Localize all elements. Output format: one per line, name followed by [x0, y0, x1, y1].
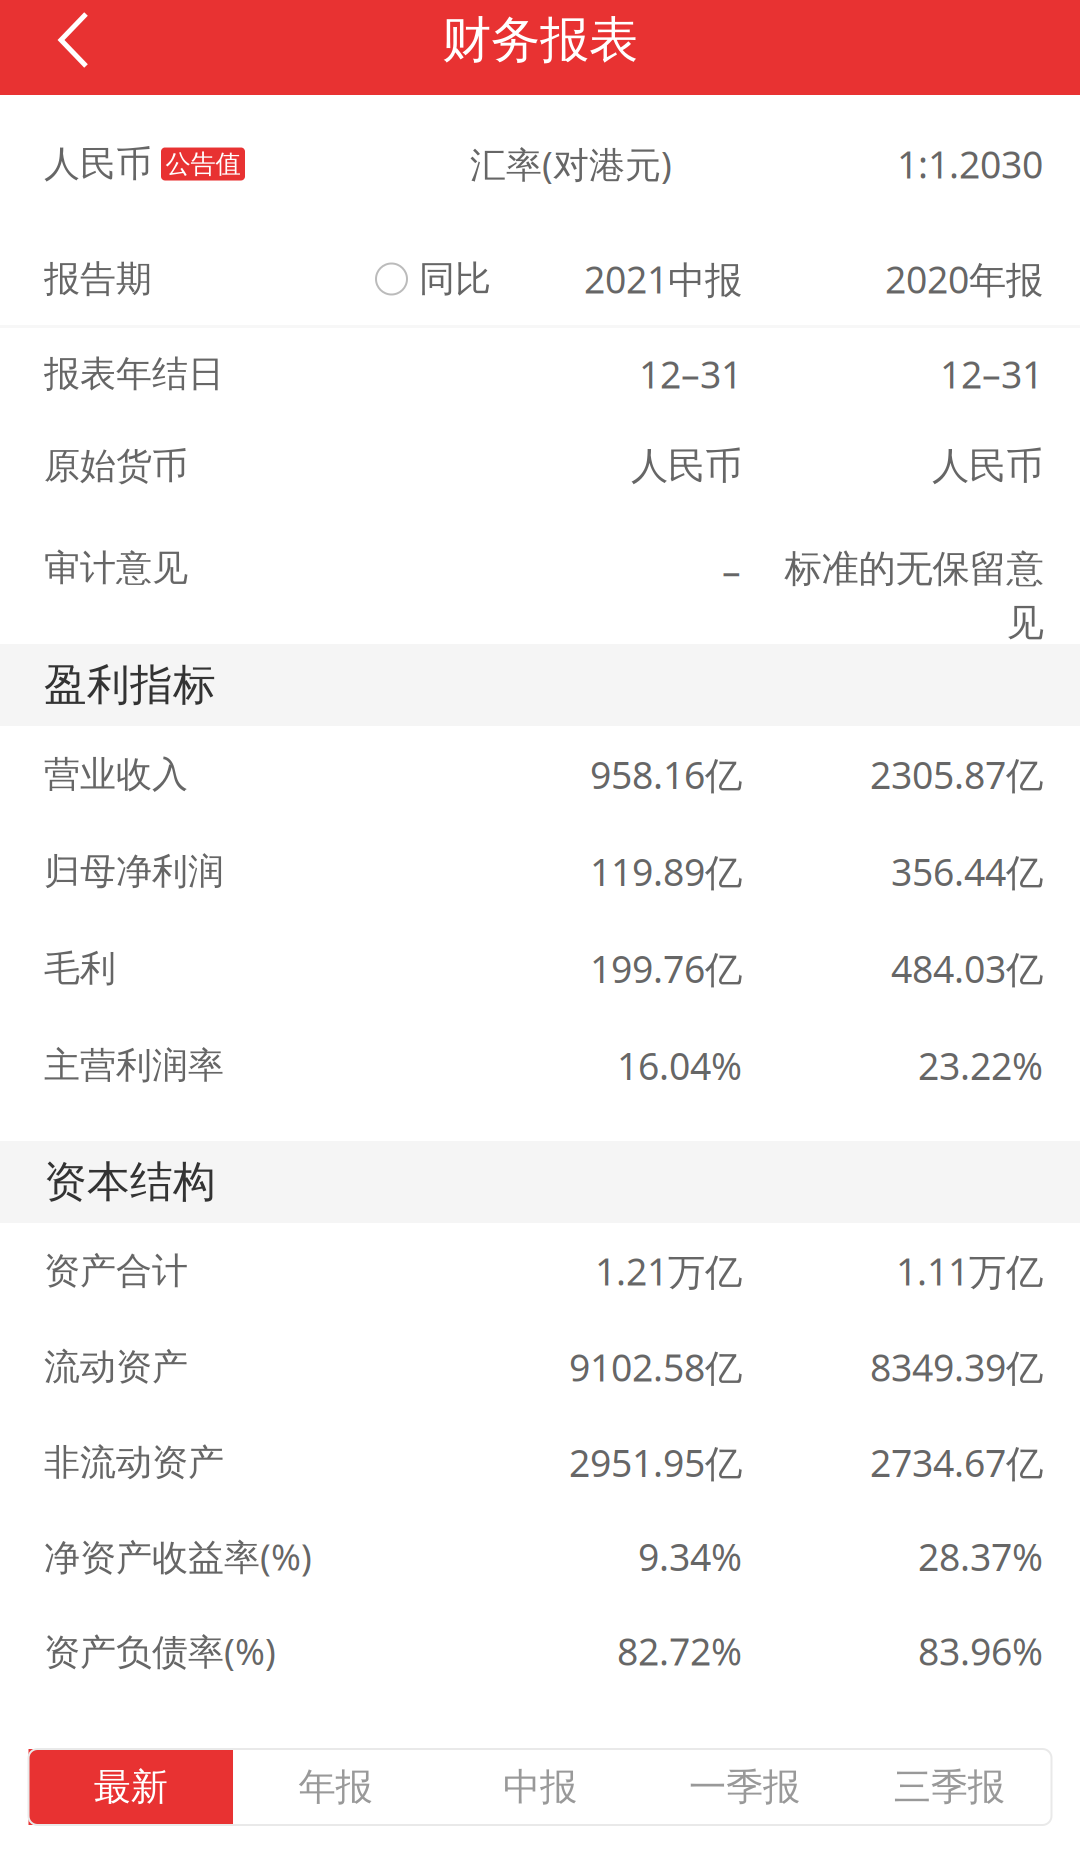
- staticText: 审计意见: [44, 546, 188, 590]
- staticText: 484.03亿: [891, 944, 1043, 993]
- staticText: 1.11万亿: [896, 1246, 1043, 1296]
- staticText: –: [722, 546, 741, 596]
- staticText: 人民币: [44, 142, 152, 186]
- staticText: 同比: [419, 257, 491, 301]
- staticText: 财务报表: [442, 10, 638, 70]
- staticText: 2305.87亿: [870, 750, 1043, 799]
- staticText: 三季报: [894, 1764, 1005, 1810]
- staticText: 归母净利润: [44, 849, 224, 894]
- button[interactable]: 原始货币: [0, 420, 1080, 512]
- staticText: 119.89亿: [590, 847, 742, 896]
- button[interactable]: 最新: [28, 1749, 233, 1825]
- button[interactable]: 三季报: [847, 1749, 1051, 1825]
- button[interactable]: 报表年结日: [0, 328, 1080, 420]
- button[interactable]: Back: [0, 0, 147, 80]
- button[interactable]: 净资产收益率(%): [0, 1510, 1080, 1603]
- staticText: 最新: [94, 1764, 168, 1810]
- staticText: 2021中报: [584, 254, 742, 304]
- staticText: 1:1.2030: [897, 139, 1043, 189]
- staticText: 原始货币: [44, 444, 188, 488]
- staticText: 9.34%: [638, 1532, 742, 1581]
- button[interactable]: 年报: [233, 1749, 438, 1825]
- staticText: 人民币: [932, 443, 1043, 489]
- staticText: 9102.58亿: [569, 1342, 742, 1392]
- staticText: 958.16亿: [590, 750, 742, 799]
- staticText: 1.21万亿: [595, 1246, 742, 1296]
- staticText: 流动资产: [44, 1345, 188, 1389]
- staticText: 人民币: [631, 443, 742, 489]
- button[interactable]: 同比: [0, 257, 491, 301]
- staticText: 净资产收益率(%): [44, 1533, 312, 1580]
- staticText: 中报: [503, 1764, 577, 1810]
- staticText: 盈利指标: [44, 659, 216, 711]
- staticText: 82.72%: [617, 1626, 742, 1676]
- staticText: 28.37%: [918, 1532, 1043, 1581]
- staticText: 2020年报: [885, 254, 1043, 304]
- staticText: 标准的无保留意见: [784, 546, 1043, 646]
- staticText: 一季报: [689, 1764, 800, 1810]
- staticText: 汇率(对港元): [470, 140, 672, 188]
- staticText: 非流动资产: [44, 1440, 224, 1485]
- staticText: 83.96%: [918, 1626, 1043, 1676]
- button[interactable]: 中报: [438, 1749, 642, 1825]
- button[interactable]: 非流动资产: [0, 1415, 1080, 1510]
- button[interactable]: 营业收入: [0, 726, 1080, 823]
- button[interactable]: 一季报: [642, 1749, 847, 1825]
- staticText: 23.22%: [918, 1041, 1043, 1090]
- staticText: 8349.39亿: [870, 1342, 1043, 1392]
- staticText: 12–31: [639, 349, 742, 399]
- button[interactable]: 归母净利润: [0, 823, 1080, 920]
- staticText: 报告期: [44, 257, 152, 301]
- staticText: 16.04%: [617, 1041, 742, 1090]
- staticText: 356.44亿: [891, 847, 1043, 896]
- button[interactable]: 毛利: [0, 920, 1080, 1017]
- button[interactable]: 流动资产: [0, 1319, 1080, 1415]
- staticText: 公告值: [165, 148, 240, 179]
- staticText: 资本结构: [44, 1156, 216, 1208]
- staticText: 12–31: [940, 349, 1043, 399]
- button[interactable]: 资产合计: [0, 1223, 1080, 1319]
- staticText: 主营利润率: [44, 1043, 224, 1088]
- staticText: 毛利: [44, 946, 116, 991]
- staticText: 2734.67亿: [870, 1438, 1043, 1487]
- staticText: 资产合计: [44, 1249, 188, 1293]
- staticText: 年报: [298, 1764, 372, 1810]
- staticText: 报表年结日: [44, 352, 224, 396]
- staticText: 2951.95亿: [569, 1438, 742, 1487]
- button[interactable]: 资产负债率(%): [0, 1603, 1080, 1699]
- staticText: 199.76亿: [590, 944, 742, 993]
- staticText: 营业收入: [44, 752, 188, 797]
- staticText: 资产负债率(%): [44, 1627, 276, 1675]
- button[interactable]: 主营利润率: [0, 1017, 1080, 1114]
